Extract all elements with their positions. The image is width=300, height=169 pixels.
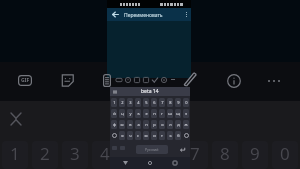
staticText: 6 — [160, 142, 170, 165]
button[interactable]: 3 — [127, 98, 133, 107]
staticText: 1 — [113, 100, 116, 105]
button[interactable]: р — [151, 120, 157, 129]
button[interactable]: 6 — [152, 141, 178, 169]
button[interactable]: т — [159, 131, 165, 140]
button[interactable]: п — [143, 120, 149, 129]
button[interactable]: н — [151, 109, 157, 118]
button[interactable]: ы — [119, 120, 125, 129]
staticText: 4 — [137, 100, 140, 105]
staticText: м — [144, 133, 148, 138]
button[interactable]: Русский — [136, 145, 168, 154]
staticText: 5 — [130, 142, 140, 165]
button[interactable]: Format 5 — [150, 75, 159, 84]
button[interactable]: Format 6 — [159, 75, 168, 84]
button[interactable]: 7 — [159, 98, 165, 107]
staticText: 7 — [190, 142, 200, 165]
button[interactable]: г — [159, 109, 165, 118]
staticText: 3 — [70, 142, 80, 165]
button[interactable]: 9 — [242, 141, 268, 169]
button[interactable]: в — [127, 120, 133, 129]
button[interactable]: 6 — [151, 98, 157, 107]
button[interactable]: More — [264, 72, 284, 90]
staticText: 9 — [250, 142, 260, 165]
button[interactable]: з — [183, 109, 189, 118]
button[interactable]: ц — [119, 109, 125, 118]
button[interactable]: Stickers — [57, 70, 77, 91]
button[interactable]: 4 — [92, 141, 118, 169]
staticText: 1 — [10, 142, 20, 165]
staticText: 6 — [153, 100, 156, 105]
button[interactable]: 5 — [122, 141, 148, 169]
staticText: у — [129, 111, 132, 116]
button[interactable]: Back — [109, 8, 121, 21]
button[interactable]: 7 — [182, 141, 208, 169]
button[interactable]: Format 3 — [132, 75, 141, 84]
button[interactable]: 9 — [175, 98, 181, 107]
button[interactable]: о — [159, 120, 165, 129]
staticText: ч — [129, 133, 132, 138]
button[interactable]: 1 — [2, 141, 28, 169]
staticText: г — [161, 111, 163, 116]
button[interactable]: Edit — [181, 70, 199, 88]
button[interactable]: е — [143, 109, 149, 118]
staticText: Русский — [145, 147, 159, 152]
button[interactable]: 2 — [32, 141, 58, 169]
button[interactable]: а — [135, 120, 141, 129]
button[interactable]: Clipboard — [97, 70, 116, 91]
button[interactable]: 8 — [167, 98, 173, 107]
button[interactable]: 3 — [62, 141, 88, 169]
staticText: д — [177, 122, 180, 127]
button[interactable]: л — [167, 120, 173, 129]
button[interactable]: у — [127, 109, 133, 118]
button[interactable]: м — [143, 131, 149, 140]
staticText: к — [137, 111, 140, 116]
button[interactable]: Enter — [179, 146, 186, 153]
button[interactable]: Collapse keyboard — [7, 110, 25, 128]
button[interactable]: Format 2 — [123, 75, 132, 84]
staticText: о — [161, 122, 164, 127]
button[interactable]: я — [119, 131, 125, 140]
staticText: ц — [121, 111, 124, 116]
button[interactable]: More options — [181, 8, 191, 21]
button[interactable]: Shift — [110, 130, 118, 141]
button[interactable]: Recents — [170, 158, 180, 168]
button[interactable]: и — [151, 131, 157, 140]
button[interactable]: Format 4 — [141, 75, 150, 84]
button[interactable]: 2 — [119, 98, 125, 107]
button[interactable]: Info — [224, 71, 243, 90]
button[interactable]: ь — [167, 131, 173, 140]
staticText: п — [145, 122, 148, 127]
button[interactable]: ч — [127, 131, 133, 140]
button[interactable]: 1 — [111, 98, 117, 107]
button[interactable]: ш — [167, 109, 173, 118]
button[interactable]: Format 1 — [114, 75, 123, 84]
staticText: ж — [184, 122, 188, 127]
staticText: 2 — [40, 142, 50, 165]
staticText: 7 — [161, 100, 164, 105]
staticText: а — [137, 122, 140, 127]
button[interactable]: к — [135, 109, 141, 118]
staticText: с — [137, 133, 139, 138]
button[interactable]: б — [175, 131, 181, 140]
button[interactable]: Back — [120, 158, 130, 168]
button[interactable]: ф — [111, 120, 117, 129]
button[interactable]: 4 — [135, 98, 141, 107]
staticText: в — [129, 122, 132, 127]
staticText: Переименовать — [124, 12, 163, 19]
button[interactable]: 8 — [212, 141, 238, 169]
button[interactable]: 0 — [272, 141, 298, 169]
button[interactable]: Home — [145, 158, 155, 168]
staticText: я — [121, 133, 124, 138]
button[interactable]: д — [175, 120, 181, 129]
button[interactable]: Backspace — [182, 130, 190, 141]
button[interactable]: ж — [183, 120, 189, 129]
staticText: б — [177, 133, 180, 138]
button[interactable]: GIF — [15, 70, 35, 91]
button[interactable]: й — [111, 109, 117, 118]
button[interactable]: 0 — [183, 98, 189, 107]
button[interactable]: с — [135, 131, 141, 140]
button[interactable]: щ — [175, 109, 181, 118]
button[interactable]: 5 — [143, 98, 149, 107]
